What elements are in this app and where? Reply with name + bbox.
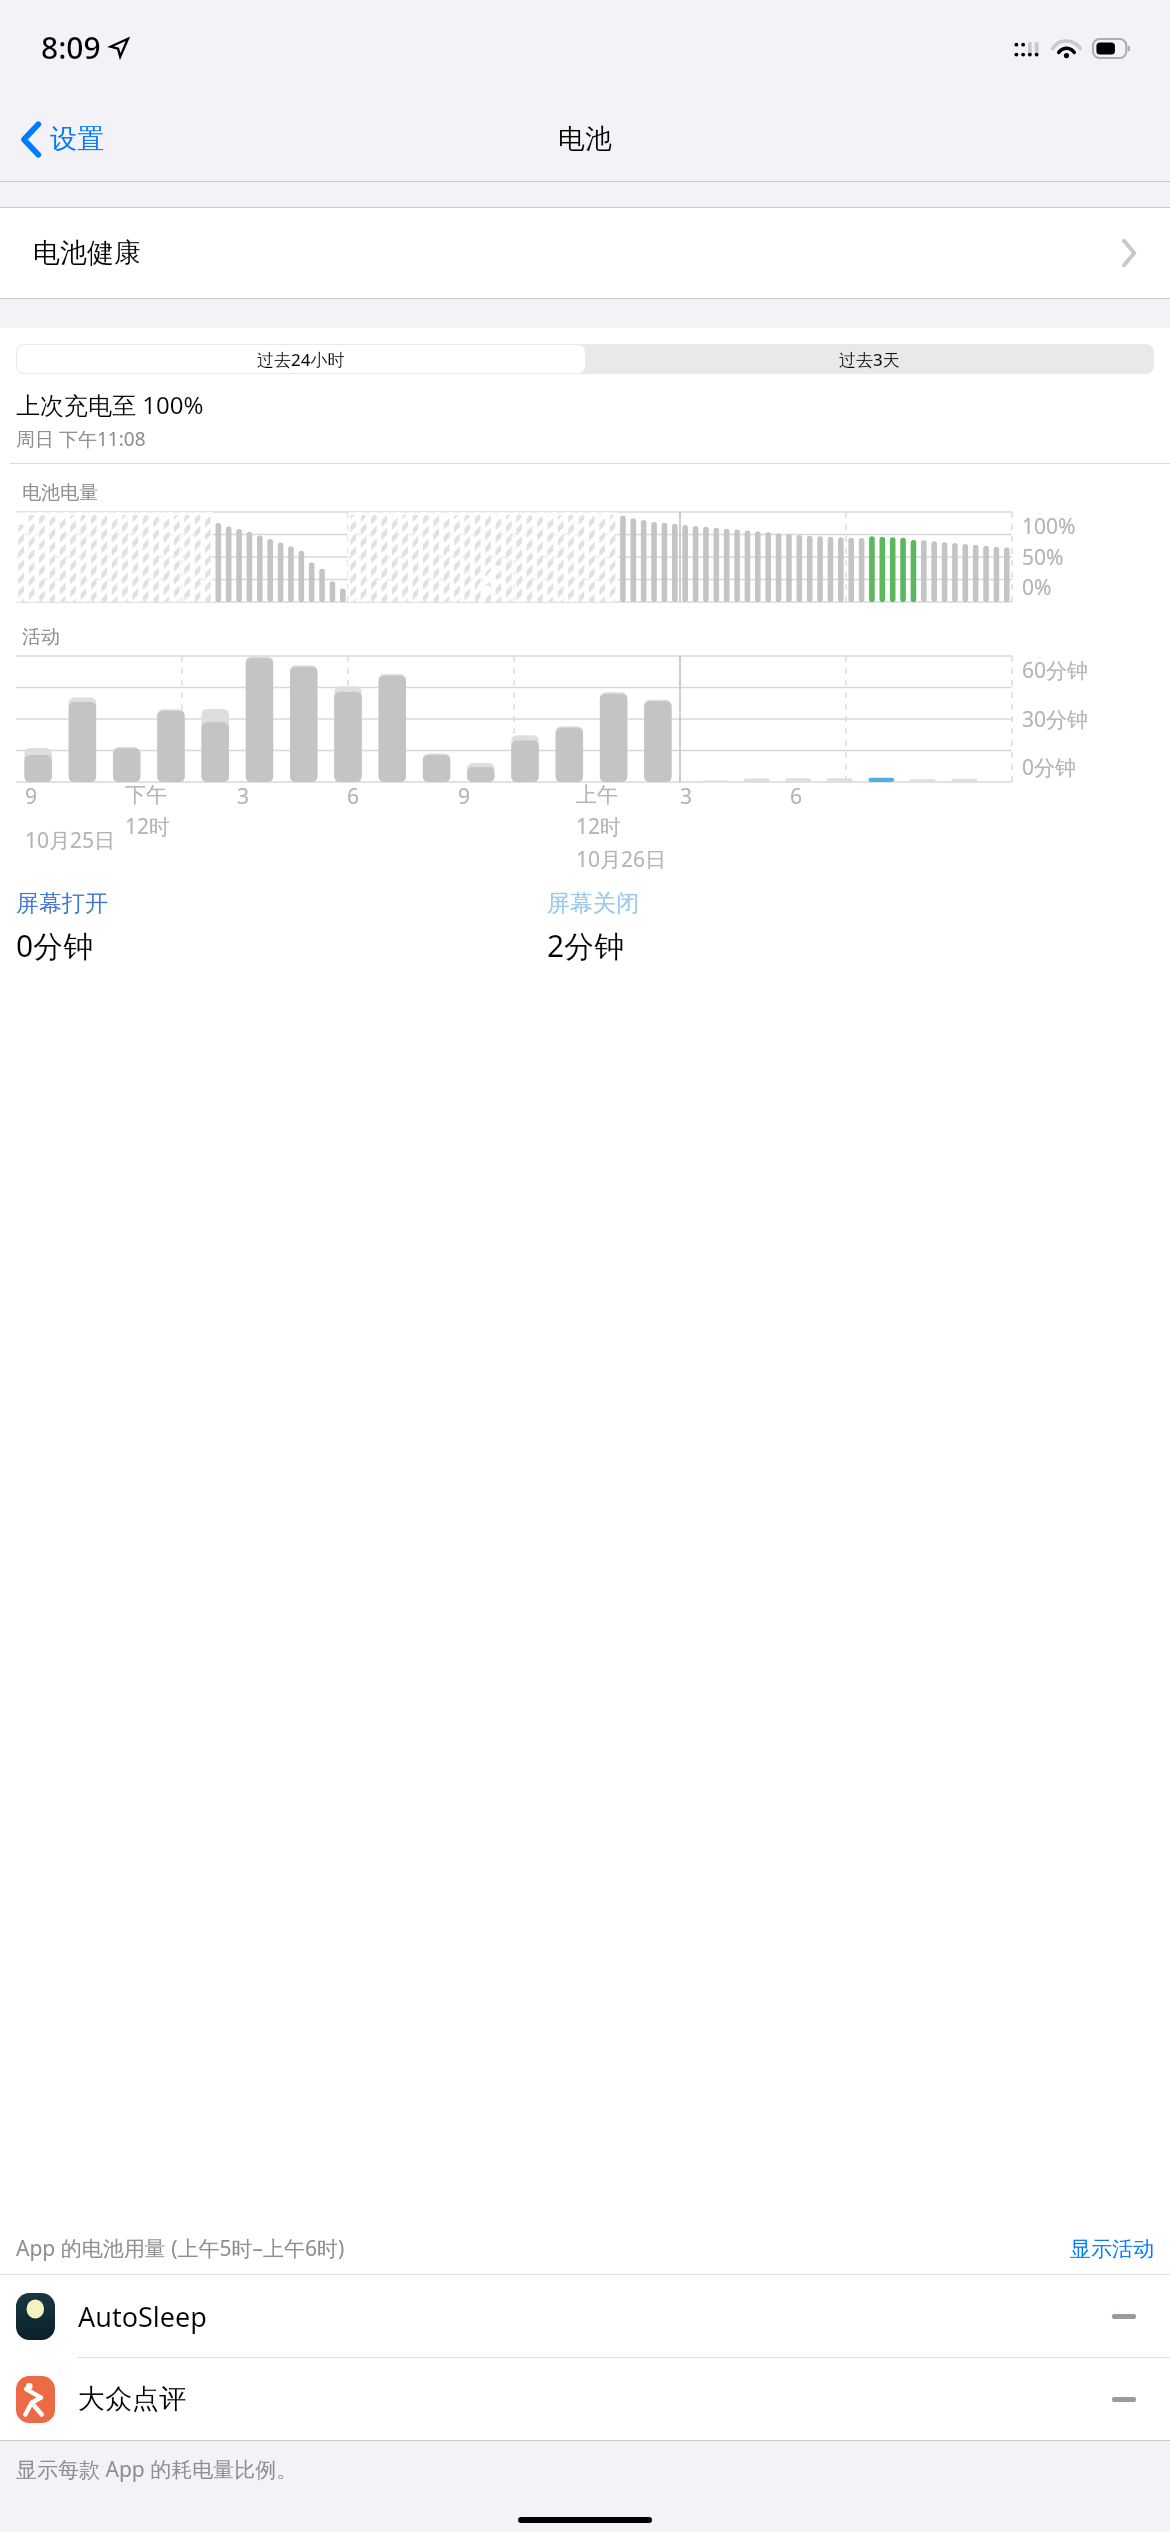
staticText: 电池电量 xyxy=(22,481,98,505)
staticText: 3 xyxy=(237,782,250,811)
staticText: 2分钟 xyxy=(547,925,625,966)
button[interactable]: 设置 xyxy=(0,112,122,166)
staticText: 电池健康 xyxy=(33,236,141,270)
staticText: 上次充电至 100% xyxy=(16,388,204,421)
button[interactable]: 电池健康 xyxy=(0,208,1170,298)
staticText: 30分钟 xyxy=(1022,705,1089,734)
button[interactable]: 显示活动 xyxy=(1070,2236,1154,2262)
staticText: AutoSleep xyxy=(78,2298,207,2335)
staticText: 12时 xyxy=(576,812,622,841)
staticText: 3 xyxy=(680,782,693,811)
button[interactable]: 过去24小时 xyxy=(17,345,585,373)
staticText: 过去3天 xyxy=(839,348,900,371)
staticText: 下午 xyxy=(125,782,167,808)
staticText: 8:09 xyxy=(41,27,101,68)
button[interactable]: 过去3天 xyxy=(585,345,1153,373)
staticText: 100% xyxy=(1022,512,1076,541)
staticText: 过去24小时 xyxy=(257,348,345,371)
staticText: 屏幕关闭 xyxy=(547,889,639,918)
staticText: 6 xyxy=(790,782,803,811)
staticText: 60分钟 xyxy=(1022,656,1089,685)
staticText: 9 xyxy=(458,782,471,811)
staticText: 显示活动 xyxy=(1070,2236,1154,2262)
staticText: 0% xyxy=(1022,573,1052,602)
button[interactable]: AutoSleep xyxy=(0,2275,1170,2357)
staticText: 0分钟 xyxy=(16,925,94,966)
staticText: 12时 xyxy=(125,812,171,841)
staticText: 上午 xyxy=(576,782,618,808)
staticText: 显示每款 App 的耗电量比例。 xyxy=(16,2455,298,2484)
other: Battery Health xyxy=(1122,240,1136,266)
staticText: 大众点评 xyxy=(78,2382,186,2416)
button[interactable]: 大众点评 xyxy=(0,2358,1170,2440)
staticText: 周日 下午11:08 xyxy=(16,426,146,452)
staticText: 活动 xyxy=(22,625,60,649)
staticText: 0分钟 xyxy=(1022,753,1077,782)
staticText: 10月26日 xyxy=(576,845,667,874)
staticText: 设置 xyxy=(50,122,104,156)
staticText: 50% xyxy=(1022,543,1064,572)
staticText: 屏幕打开 xyxy=(16,889,108,918)
staticText: 10月25日 xyxy=(25,826,116,855)
staticText: 电池 xyxy=(558,122,612,156)
staticText: 6 xyxy=(347,782,360,811)
staticText: 9 xyxy=(25,782,38,811)
staticText: App 的电池用量 (上午5时–上午6时) xyxy=(16,2234,345,2263)
